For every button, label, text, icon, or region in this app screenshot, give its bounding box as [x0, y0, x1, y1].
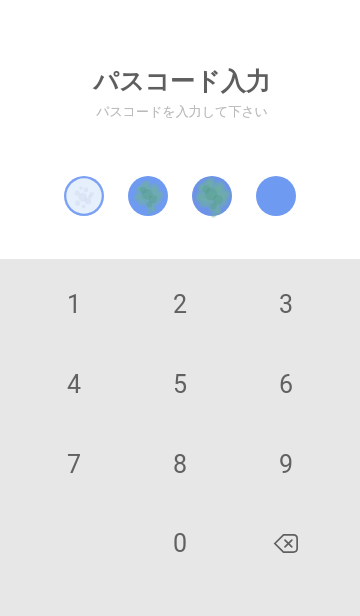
button[interactable]: 4: [21, 344, 127, 424]
button[interactable]: 0: [127, 503, 233, 583]
button[interactable]: 6: [233, 344, 339, 424]
staticText: 2: [173, 290, 188, 319]
button[interactable]: 1: [21, 264, 127, 344]
staticText: 0: [173, 529, 188, 558]
button[interactable]: 3: [233, 264, 339, 344]
staticText: パスコード入力: [93, 66, 271, 97]
staticText: 8: [173, 450, 188, 479]
staticText: 6: [279, 370, 294, 399]
button[interactable]: 2: [127, 264, 233, 344]
staticText: 4: [67, 370, 82, 399]
staticText: 7: [67, 450, 82, 479]
staticText: 9: [279, 450, 294, 479]
staticText: 5: [173, 370, 188, 399]
staticText: 3: [279, 290, 294, 319]
button[interactable]: 5: [127, 344, 233, 424]
button[interactable]: 8: [127, 424, 233, 504]
staticText: パスコードを入力して下さい: [96, 103, 268, 119]
staticText: 1: [67, 290, 82, 319]
button[interactable]: 7: [21, 424, 127, 504]
button[interactable]: Delete: [233, 503, 339, 583]
button[interactable]: 9: [233, 424, 339, 504]
